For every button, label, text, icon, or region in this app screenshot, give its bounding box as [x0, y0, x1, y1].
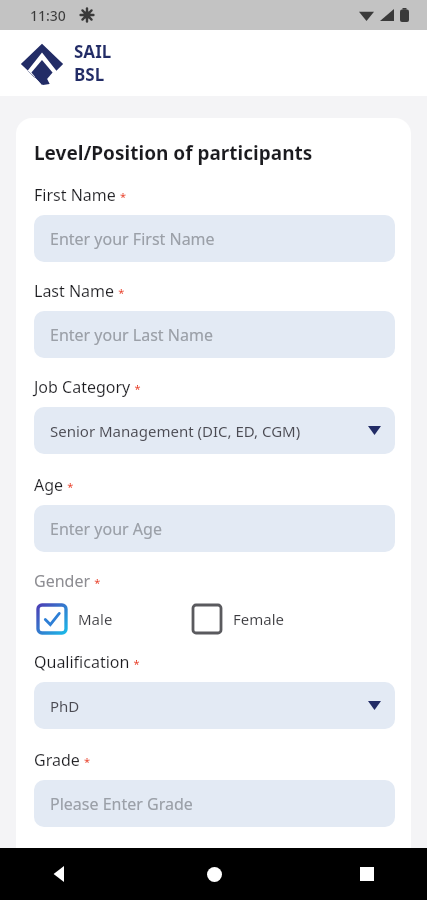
staticText: Last Name * [34, 280, 125, 302]
button[interactable]: Enter your First Name [34, 215, 395, 262]
staticText: Gender * [34, 570, 101, 592]
staticText: SAIL [74, 40, 112, 63]
staticText: Enter your Age [50, 518, 162, 540]
staticText: Age * [34, 474, 74, 496]
staticText: Level/Position of participants [34, 140, 313, 166]
button[interactable]: Home [194, 854, 234, 894]
staticText: Qualification * [34, 651, 140, 673]
staticText: Male [78, 609, 113, 629]
button[interactable]: PhD [34, 682, 395, 729]
staticText: PhD [50, 696, 80, 716]
staticText: BSL [74, 63, 105, 86]
staticText: First Name * [34, 184, 126, 206]
button[interactable]: Back [40, 854, 80, 894]
button[interactable]: Recent apps [347, 854, 387, 894]
button[interactable]: Enter your Last Name [34, 311, 395, 358]
staticText: Please Enter Grade [50, 793, 193, 815]
button[interactable]: Please Enter Grade [34, 780, 395, 827]
button[interactable]: Enter your Age [34, 505, 395, 552]
staticText: 11:30 [30, 6, 66, 25]
staticText: Job Category * [34, 376, 141, 398]
staticText: Enter your First Name [50, 228, 215, 250]
staticText: Enter your Last Name [50, 324, 213, 346]
button[interactable]: Female [189, 601, 289, 637]
button[interactable]: Senior Management (DIC, ED, CGM) [34, 407, 395, 454]
button[interactable]: Male [34, 601, 117, 637]
staticText: Female [233, 609, 285, 629]
staticText: Senior Management (DIC, ED, CGM) [50, 421, 301, 441]
staticText: Grade * [34, 749, 90, 771]
